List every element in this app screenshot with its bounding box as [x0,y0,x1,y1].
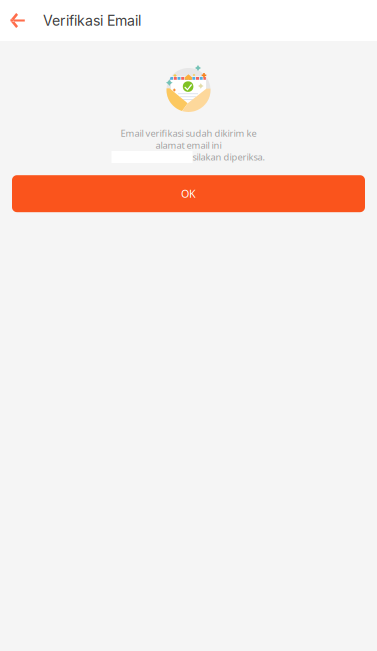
staticText: Email verifikasi sudah dikirim ke [120,127,256,139]
button[interactable]: Back [0,0,43,41]
staticText: Verifikasi Email [43,12,141,29]
staticText: OK [181,187,196,201]
staticText: silakan diperiksa. [192,151,265,163]
staticText: alamat email ini [155,139,221,151]
button[interactable]: OK [12,175,365,212]
